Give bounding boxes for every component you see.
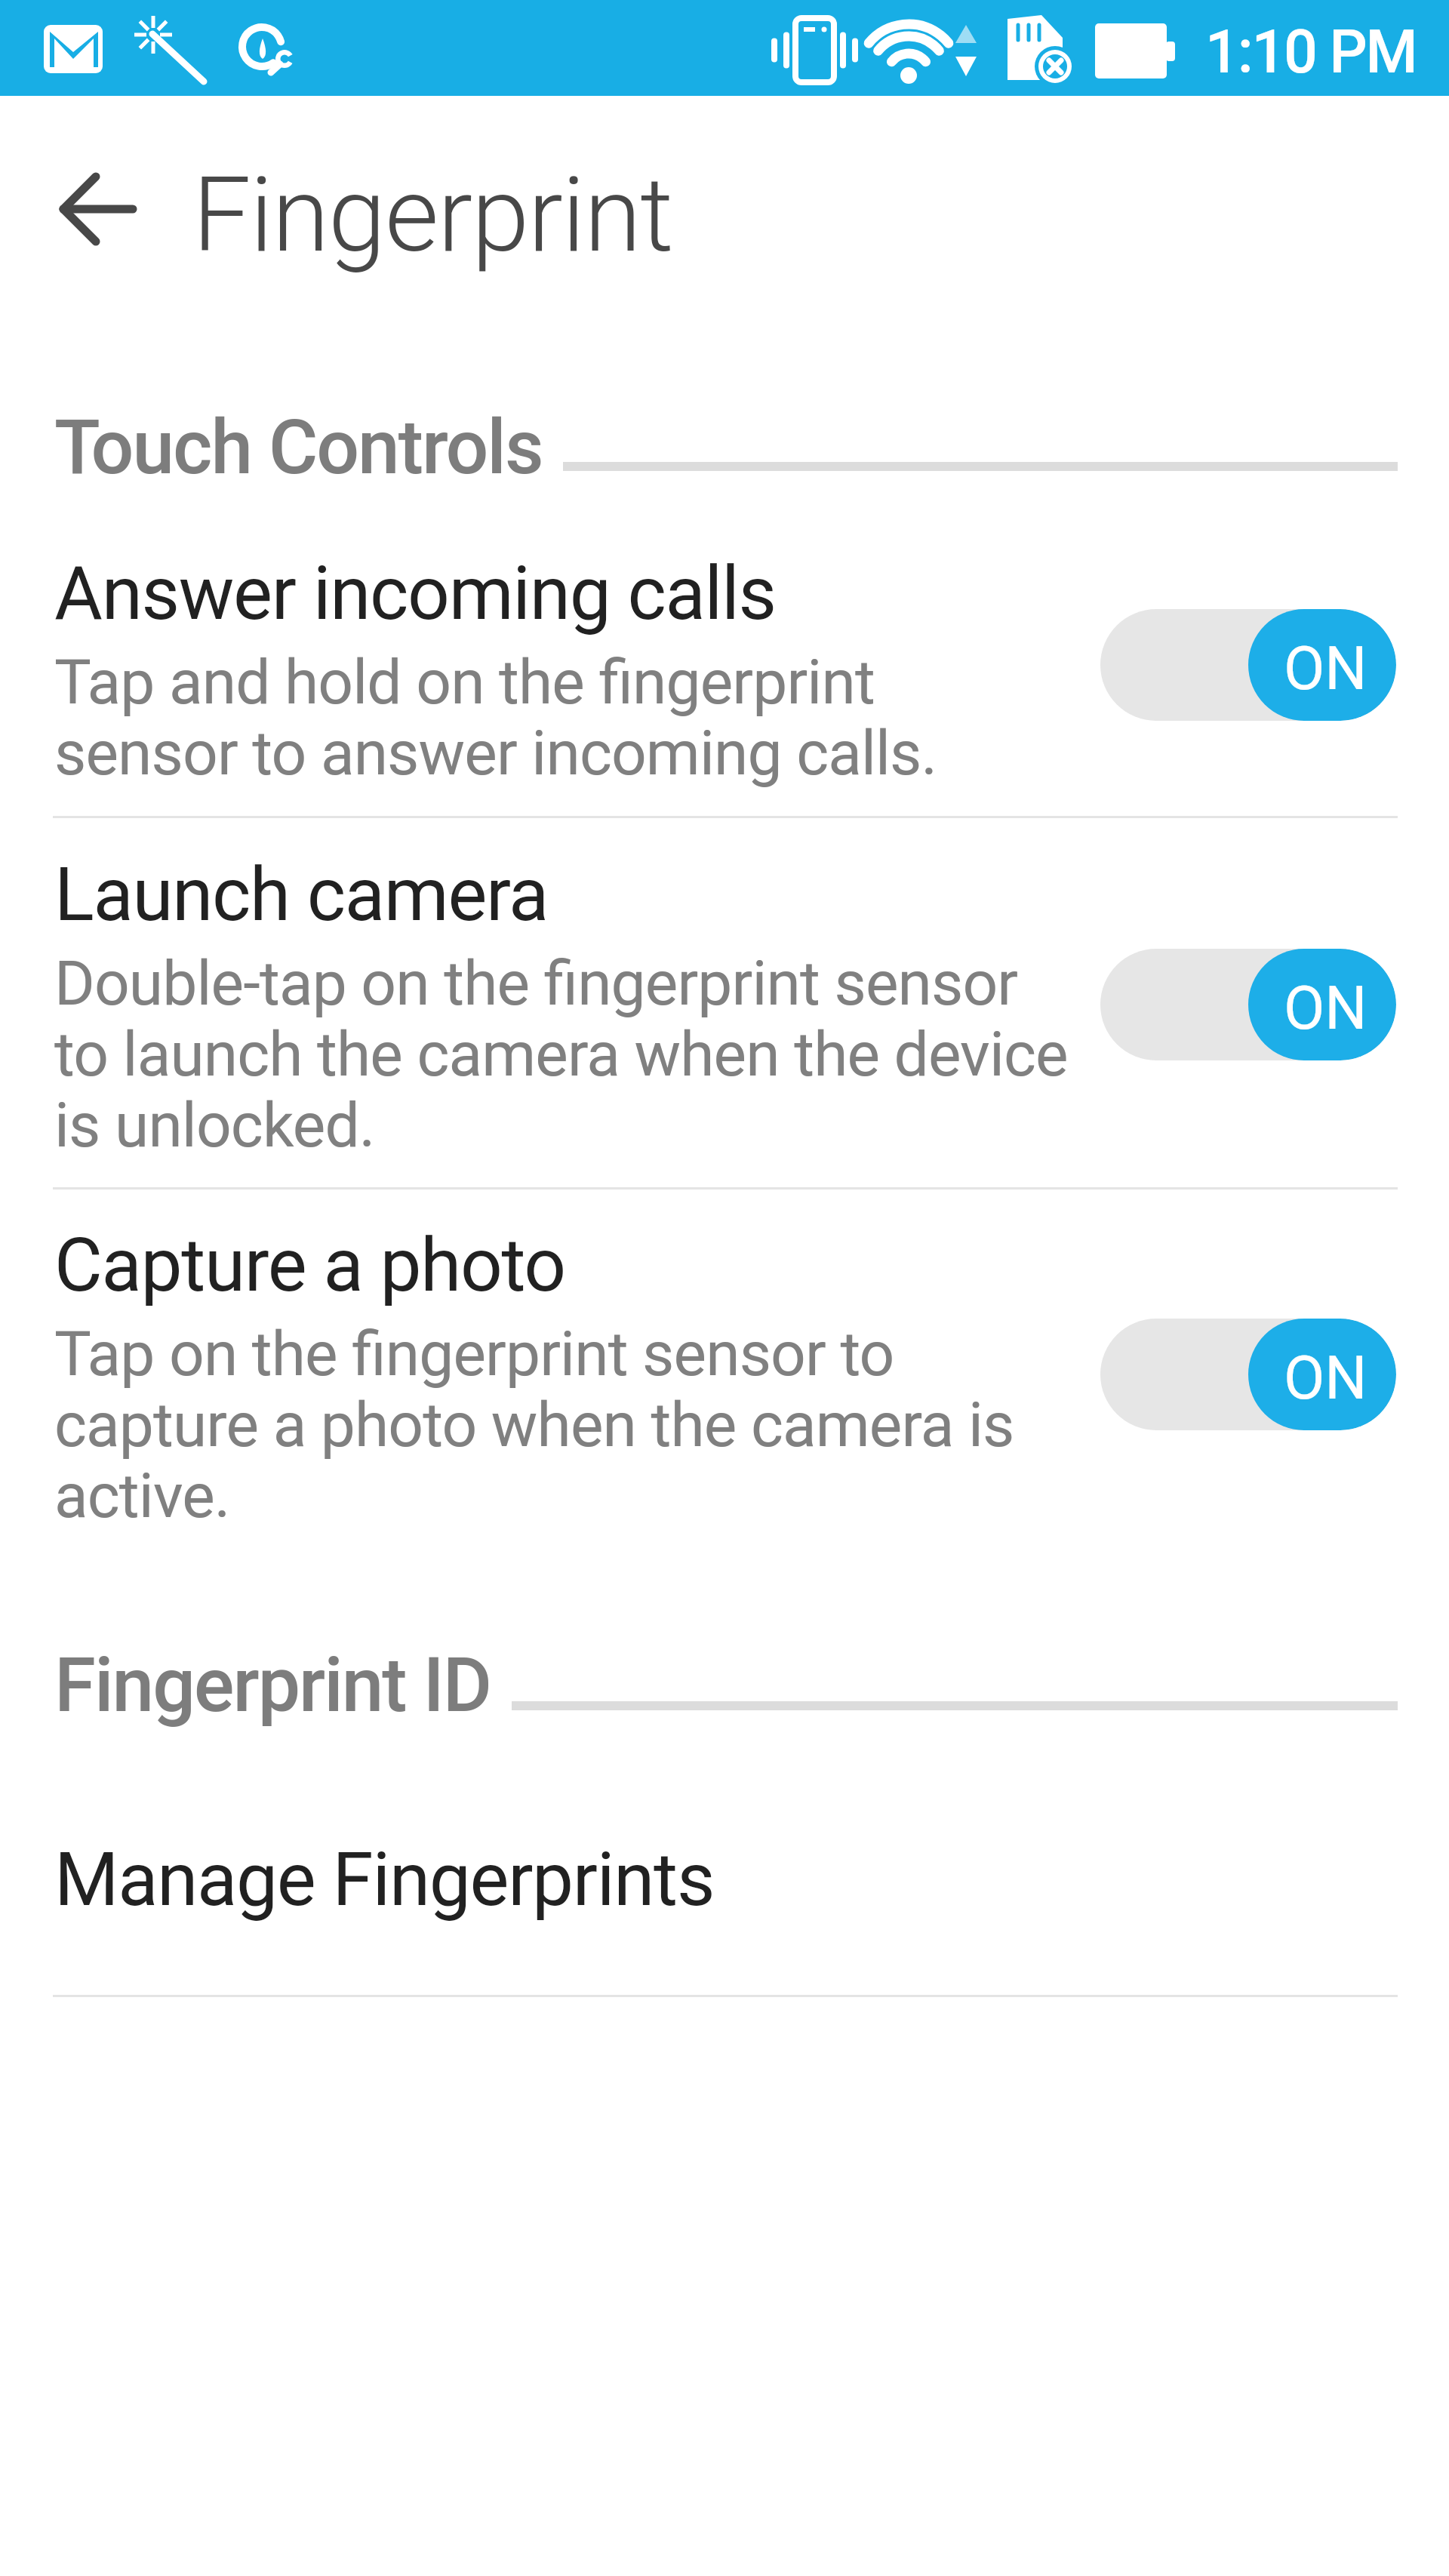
button[interactable]: Answer incoming calls (0, 516, 1449, 816)
staticText: ON (1284, 634, 1367, 704)
staticText: is unlocked. (54, 1089, 375, 1162)
staticText: Capture a photo (54, 1222, 565, 1309)
staticText: capture a photo when the camera is (54, 1389, 1014, 1461)
staticText: Double-tap on the fingerprint sensor (54, 947, 1018, 1020)
staticText: ON (1284, 1343, 1367, 1414)
staticText: 1:10 PM (1205, 17, 1417, 88)
button[interactable]: Capture a photo, switch on (1100, 1319, 1396, 1430)
staticText: Tap and hold on the fingerprint (54, 646, 875, 719)
staticText: ON (1284, 974, 1367, 1044)
staticText: Tap on the fingerprint sensor to (54, 1318, 894, 1390)
staticText: Launch camera (54, 851, 549, 938)
button[interactable]: Launch camera (0, 818, 1449, 1187)
staticText: Touch Controls (54, 403, 543, 491)
button[interactable]: Back (36, 159, 154, 257)
staticText: Fingerprint (192, 154, 673, 276)
button[interactable]: Launch camera, switch on (1100, 949, 1396, 1060)
staticText: sensor to answer incoming calls. (54, 717, 937, 789)
staticText: to launch the camera when the device (54, 1018, 1068, 1091)
button[interactable]: Manage Fingerprints (0, 1789, 1449, 1962)
staticText: Answer incoming calls (54, 550, 776, 637)
staticText: Fingerprint ID (54, 1641, 491, 1729)
staticText: active. (54, 1460, 230, 1532)
button[interactable]: Answer incoming calls, switch on (1100, 609, 1396, 721)
staticText: Manage Fingerprints (54, 1836, 715, 1923)
button[interactable]: Capture a photo (0, 1190, 1449, 1559)
